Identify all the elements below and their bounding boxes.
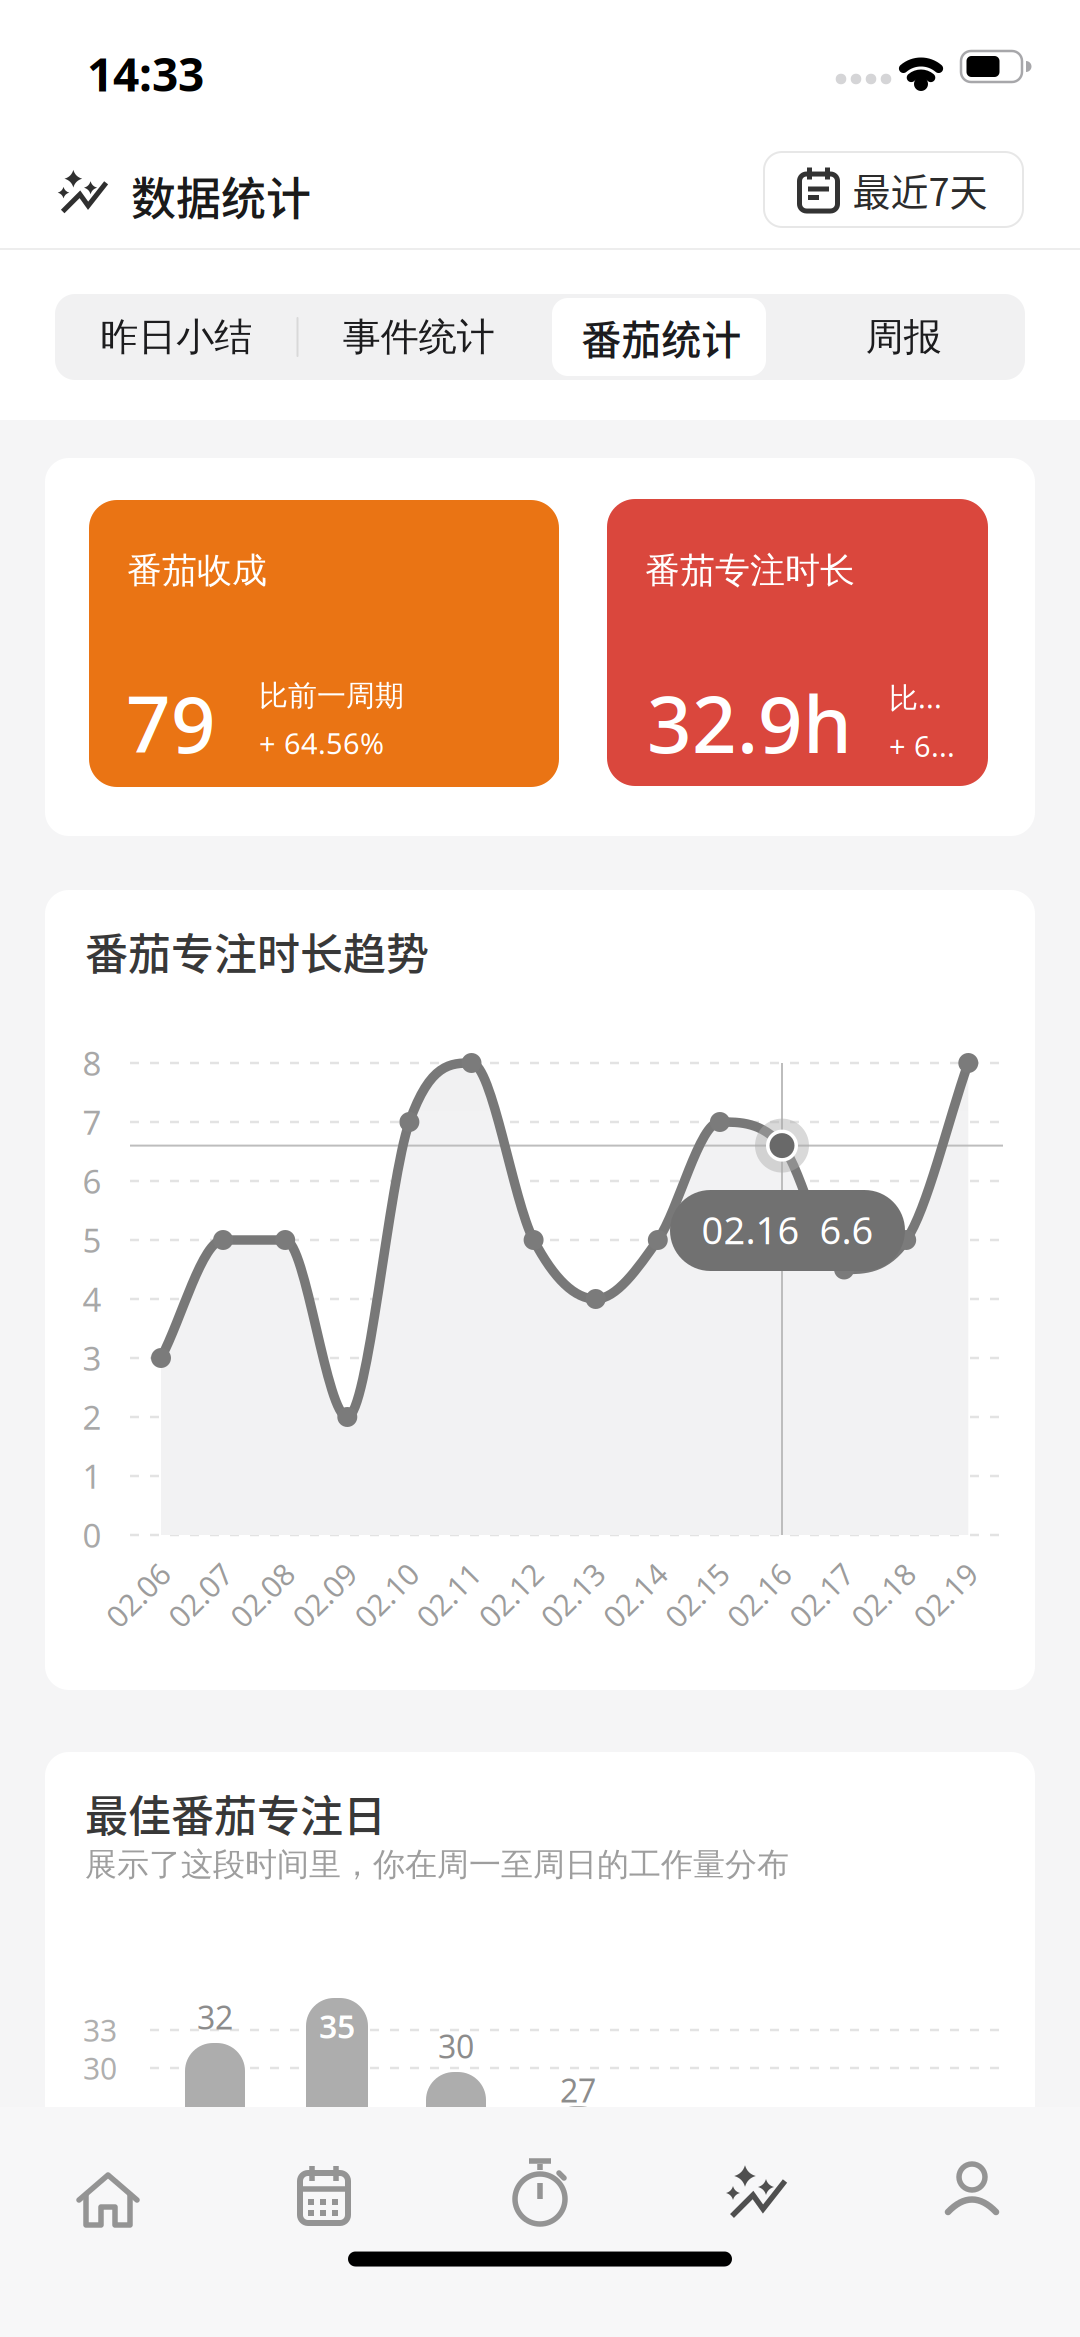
staticText: 02.06: [100, 1575, 176, 1615]
staticText: 02.08: [224, 1575, 300, 1615]
staticText: 02.10: [348, 1575, 424, 1615]
staticText: 比前一周期: [259, 678, 404, 714]
staticText: 番茄专注时长趋势: [85, 921, 429, 982]
staticText: 32: [197, 1996, 233, 2038]
staticText: 02.16: [721, 1575, 797, 1615]
staticText: 02.16 6.6: [701, 1204, 873, 1255]
staticText: 02.17: [783, 1575, 859, 1615]
staticText: 3: [82, 1336, 101, 1380]
button[interactable]: 事件统计: [297, 294, 540, 380]
staticText: 02.11: [410, 1575, 486, 1615]
staticText: 6: [82, 1159, 101, 1203]
staticText: 番茄收成: [127, 549, 267, 592]
button[interactable]: 番茄统计: [540, 294, 782, 380]
staticText: 比...: [889, 678, 942, 716]
staticText: 数据统计: [131, 164, 311, 227]
staticText: 35: [319, 2005, 355, 2047]
button[interactable]: 周报: [782, 294, 1025, 380]
button[interactable]: 首页: [0, 2103, 216, 2287]
staticText: 番茄专注时长: [645, 549, 855, 592]
staticText: 0: [82, 1513, 101, 1557]
staticText: + 6...: [889, 726, 955, 765]
staticText: 27: [560, 2069, 596, 2111]
staticText: 02.09: [286, 1575, 362, 1615]
staticText: 4: [82, 1277, 101, 1321]
staticText: 02.19: [907, 1575, 983, 1615]
button[interactable]: 数据统计: [648, 2103, 864, 2287]
staticText: 02.12: [473, 1575, 549, 1615]
staticText: 2: [82, 1395, 101, 1439]
staticText: + 64.56%: [259, 724, 384, 762]
staticText: 周报: [866, 314, 942, 360]
staticText: 30: [83, 2048, 117, 2088]
button[interactable]: 计时: [432, 2103, 648, 2287]
staticText: 02.18: [845, 1575, 921, 1615]
staticText: 事件统计: [343, 314, 495, 360]
staticText: 展示了这段时间里，你在周一至周日的工作量分布: [85, 1845, 789, 1884]
button[interactable]: 我的: [864, 2103, 1080, 2287]
staticText: 昨日小结: [100, 314, 252, 360]
staticText: 33: [83, 2010, 117, 2050]
staticText: 32.9h: [647, 671, 852, 775]
staticText: 02.14: [597, 1575, 673, 1615]
button[interactable]: 最近7天: [764, 152, 1023, 227]
staticText: 1: [82, 1454, 101, 1498]
staticText: 8: [82, 1041, 101, 1085]
staticText: 79: [126, 671, 216, 775]
staticText: 5: [82, 1218, 101, 1262]
button[interactable]: 昨日小结: [55, 294, 297, 380]
staticText: 02.07: [162, 1575, 238, 1615]
staticText: 02.15: [659, 1575, 735, 1615]
staticText: 7: [82, 1100, 101, 1144]
button[interactable]: 日历: [216, 2103, 432, 2287]
staticText: 最近7天: [852, 163, 987, 216]
staticText: 02.13: [535, 1575, 611, 1615]
staticText: 最佳番茄专注日: [85, 1783, 386, 1844]
staticText: 番茄统计: [581, 309, 741, 365]
staticText: 14:33: [87, 43, 204, 104]
staticText: 30: [438, 2025, 474, 2067]
